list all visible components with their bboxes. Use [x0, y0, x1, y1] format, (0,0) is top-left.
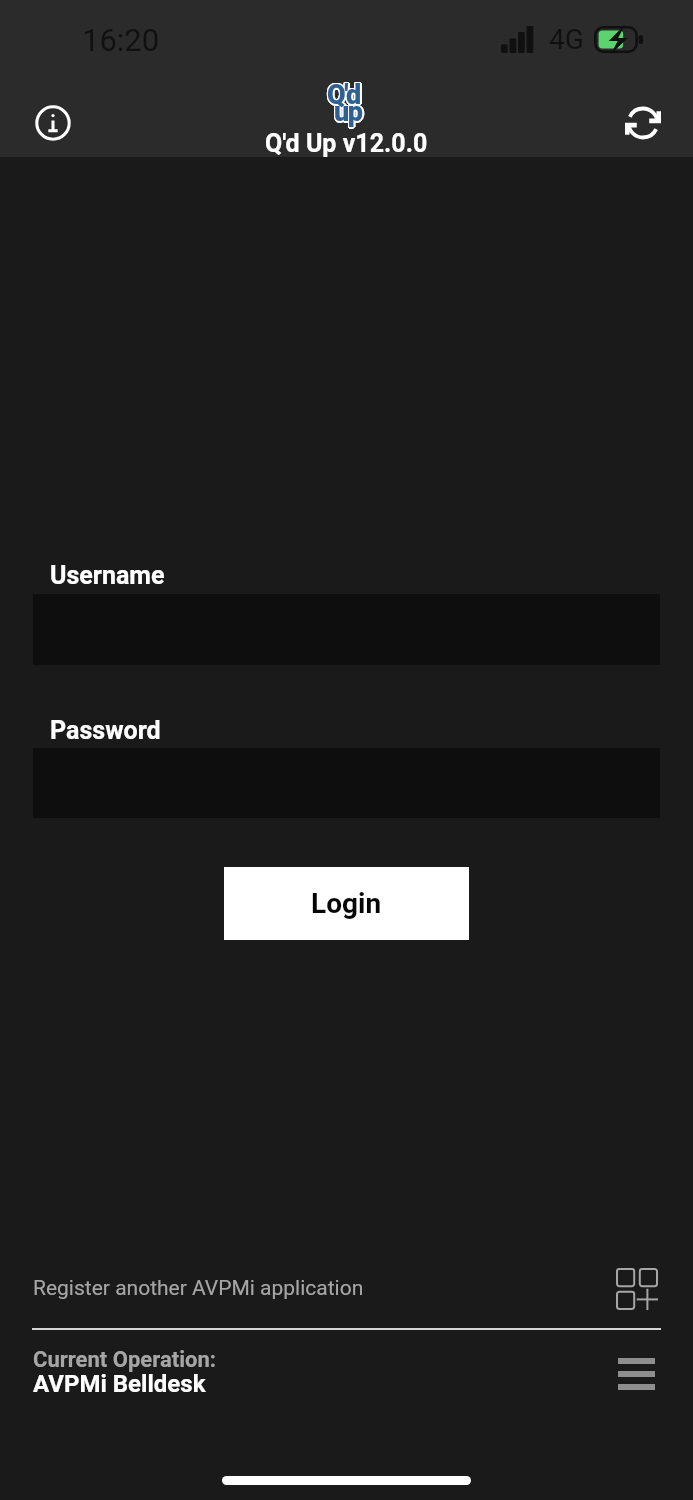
- staticText: Q'd: [327, 81, 360, 113]
- staticText: up: [335, 97, 363, 129]
- button[interactable]: Current Operation:: [0, 1341, 693, 1406]
- staticText: AVPMi Belldesk: [33, 1370, 206, 1398]
- staticText: Q'd: [328, 80, 361, 112]
- staticText: Q'd: [326, 79, 359, 111]
- staticText: up: [334, 95, 362, 127]
- staticText: 4G: [549, 23, 584, 56]
- staticText: Current Operation:: [33, 1347, 216, 1373]
- staticText: 16:20: [82, 22, 160, 58]
- staticText: up: [334, 96, 362, 128]
- staticText: Username: [50, 561, 165, 590]
- staticText: up: [333, 95, 361, 127]
- staticText: up: [333, 97, 361, 129]
- staticText: Register another AVPMi application: [33, 1276, 364, 1301]
- button[interactable]: Login: [224, 867, 469, 940]
- staticText: up: [334, 98, 362, 130]
- staticText: Q'd: [327, 78, 360, 110]
- staticText: Q'd: [327, 79, 360, 111]
- staticText: Q'd: [326, 78, 359, 110]
- staticText: Q'd: [328, 78, 361, 110]
- staticText: Q'd: [329, 79, 362, 111]
- staticText: up: [335, 95, 363, 127]
- button[interactable]: Information: [22, 92, 84, 154]
- staticText: Password: [50, 716, 161, 745]
- button[interactable]: Register another AVPMi application: [0, 1253, 693, 1323]
- staticText: Login: [311, 887, 382, 920]
- button[interactable]: Refresh: [612, 92, 674, 154]
- staticText: up: [333, 96, 361, 128]
- staticText: Q'd: [326, 80, 359, 112]
- staticText: Q'd Up v12.0.0: [265, 129, 428, 158]
- staticText: up: [336, 96, 364, 128]
